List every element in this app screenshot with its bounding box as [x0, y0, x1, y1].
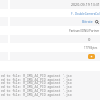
staticText: ed to file: R_IMG_A4_PCO against '.jso: [1, 93, 72, 97]
staticText: 0: [88, 37, 91, 43]
button[interactable]: Search: [95, 20, 99, 24]
staticText: ed to file: R_IMG_A4_PCO against '.jso: [1, 89, 72, 93]
button[interactable]: Play: [88, 54, 95, 59]
staticText: ed to file: R_IMG_A4_PCO against '.jso: [1, 74, 72, 78]
staticText: ed to file: R_IMG_A4_PCO against '.jso: [1, 85, 72, 89]
button[interactable]: F - DoubleCameraCal: [71, 12, 100, 16]
staticText: ed to file: R_IMG_A4_PCO against '.jso: [1, 81, 72, 85]
staticText: 2020-09-19 13:31: [71, 2, 100, 7]
staticText: ed to file: R_IMG_A4_PCO against '.jso: [1, 78, 72, 82]
staticText: Partisan EDNU/Partner: [69, 29, 100, 33]
staticText: Bitrate: [82, 19, 93, 24]
staticText: 1779 Bytes: [84, 46, 98, 50]
